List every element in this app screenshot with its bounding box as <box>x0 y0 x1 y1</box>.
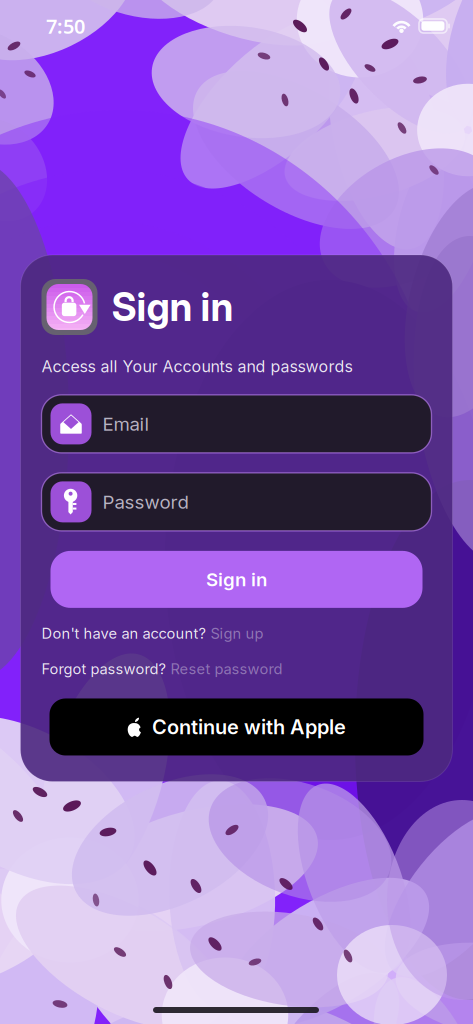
staticText: Password <box>102 491 188 513</box>
button[interactable]: Email <box>41 395 431 453</box>
staticText: Don't have an account? <box>41 625 205 642</box>
button[interactable]: Sign in <box>41 551 431 608</box>
button[interactable]: Reset password <box>170 660 282 677</box>
staticText: Sign in <box>111 284 233 330</box>
button[interactable]: Continue with Apple <box>41 698 431 755</box>
button[interactable]: Password <box>41 473 431 531</box>
staticText: Email <box>102 413 149 435</box>
staticText: Sign up <box>210 625 263 642</box>
staticText: 7:50 <box>46 13 85 39</box>
button[interactable]: Sign up <box>210 625 263 642</box>
staticText: Forgot password? <box>41 660 165 677</box>
staticText: Continue with Apple <box>152 715 346 739</box>
staticText: Reset password <box>170 660 282 677</box>
staticText: Sign in <box>206 568 267 590</box>
staticText: Access all Your Accounts and passwords <box>41 357 352 376</box>
